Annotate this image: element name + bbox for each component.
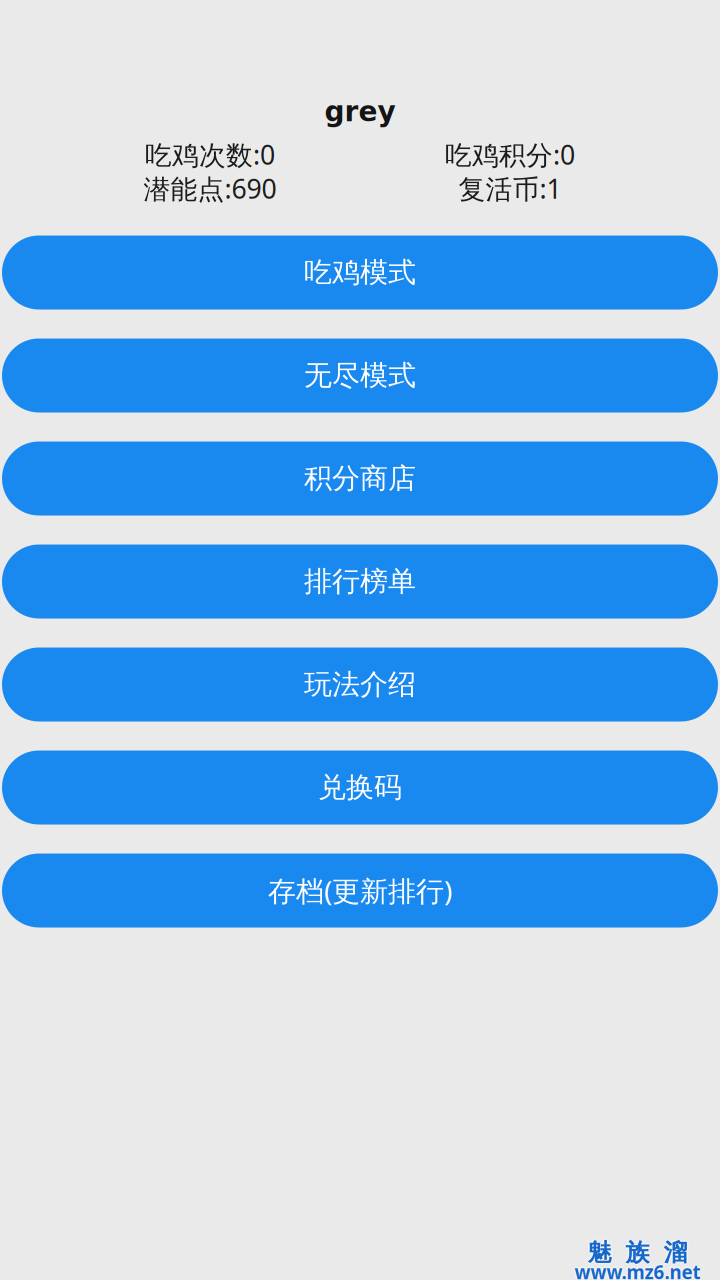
staticText: 排行榜单: [304, 564, 416, 599]
staticText: 潜能点:690: [143, 171, 276, 206]
staticText: 魅 族 溜: [587, 1236, 687, 1266]
staticText: www.mz6.net: [574, 1258, 700, 1280]
staticText: 无尽模式: [304, 358, 416, 393]
staticText: www.mz6.net: [574, 1260, 700, 1280]
staticText: 积分商店: [304, 461, 416, 496]
staticText: www.mz6.net: [573, 1260, 699, 1280]
staticText: www.mz6.net: [576, 1260, 702, 1280]
button[interactable]: 无尽模式: [2, 338, 718, 412]
staticText: 吃鸡积分:0: [445, 137, 575, 172]
staticText: 吃鸡次数:0: [145, 137, 275, 172]
button[interactable]: 吃鸡模式: [2, 235, 718, 309]
button[interactable]: 玩法介绍: [2, 647, 718, 721]
staticText: 存档(更新排行): [268, 872, 452, 909]
staticText: 复活币:1: [458, 171, 561, 206]
staticText: 兑换码: [318, 770, 402, 805]
button[interactable]: 兑换码: [2, 750, 718, 824]
button[interactable]: 存档(更新排行): [2, 853, 718, 927]
button[interactable]: 积分商店: [2, 441, 718, 515]
staticText: 玩法介绍: [304, 667, 416, 702]
staticText: 魅 族 溜: [587, 1239, 687, 1269]
staticText: 魅 族 溜: [586, 1238, 686, 1267]
button[interactable]: 排行榜单: [2, 544, 718, 618]
staticText: 魅 族 溜: [589, 1238, 689, 1267]
staticText: 魅 族 溜: [587, 1238, 687, 1267]
staticText: 吃鸡模式: [304, 255, 416, 290]
staticText: grey: [324, 95, 395, 128]
staticText: www.mz6.net: [574, 1261, 700, 1280]
